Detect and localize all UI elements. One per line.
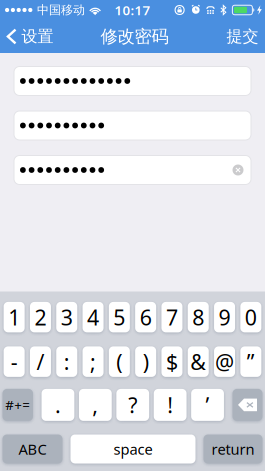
- staticText: 中国移动: [37, 3, 85, 17]
- button[interactable]: 8: [188, 302, 209, 332]
- button[interactable]: 提交: [216, 21, 265, 52]
- button[interactable]: 6: [135, 302, 156, 332]
- staticText: (: [116, 347, 122, 376]
- staticText: ,: [92, 391, 98, 419]
- staticText: $: [166, 347, 178, 376]
- button[interactable]: ’: [191, 389, 224, 421]
- button[interactable]: ?: [116, 389, 149, 421]
- button[interactable]: 4: [83, 302, 104, 332]
- button[interactable]: 7: [161, 302, 182, 332]
- button[interactable]: space: [70, 434, 195, 463]
- button[interactable]: :: [56, 346, 77, 377]
- button[interactable]: [14, 155, 251, 184]
- button[interactable]: 3: [56, 302, 77, 332]
- staticText: 1: [8, 303, 20, 331]
- button[interactable]: 2: [30, 302, 51, 332]
- button[interactable]: ABC: [2, 434, 62, 463]
- staticText: 修改密码: [100, 26, 168, 47]
- button[interactable]: .: [42, 389, 74, 421]
- button[interactable]: #+=: [2, 389, 33, 421]
- button[interactable]: [14, 111, 251, 140]
- button[interactable]: -: [4, 346, 25, 377]
- button[interactable]: $: [161, 346, 182, 377]
- button[interactable]: /: [30, 346, 51, 377]
- staticText: ;: [90, 347, 96, 376]
- staticText: @: [215, 347, 234, 376]
- button[interactable]: @: [214, 346, 235, 377]
- staticText: 9: [219, 303, 231, 331]
- staticText: 7: [166, 303, 178, 331]
- staticText: :: [64, 347, 70, 376]
- button[interactable]: return: [203, 434, 262, 463]
- button[interactable]: ): [135, 346, 156, 377]
- staticText: .: [55, 391, 61, 419]
- staticText: ): [143, 347, 149, 376]
- button[interactable]: [14, 66, 251, 95]
- staticText: -: [11, 347, 18, 376]
- staticText: 2: [34, 303, 46, 331]
- button[interactable]: !: [154, 389, 187, 421]
- staticText: 10:17: [114, 1, 150, 19]
- staticText: 设置: [21, 27, 53, 46]
- button[interactable]: (: [109, 346, 130, 377]
- button[interactable]: 1: [4, 302, 25, 332]
- staticText: space: [113, 439, 152, 459]
- staticText: 6: [140, 303, 152, 331]
- staticText: ?: [128, 391, 137, 419]
- button[interactable]: 删除: [232, 389, 262, 421]
- staticText: ”: [247, 347, 255, 376]
- staticText: 4: [87, 303, 99, 331]
- button[interactable]: ;: [83, 346, 104, 377]
- staticText: /: [36, 347, 44, 376]
- staticText: &: [190, 347, 206, 376]
- button[interactable]: &: [188, 346, 209, 377]
- button[interactable]: 清除文本: [229, 161, 247, 179]
- staticText: 提交: [226, 27, 258, 46]
- button[interactable]: ,: [79, 389, 112, 421]
- staticText: 5: [113, 303, 125, 331]
- button[interactable]: 设置: [0, 21, 61, 52]
- button[interactable]: 0: [240, 302, 261, 332]
- staticText: 8: [192, 303, 204, 331]
- button[interactable]: 5: [109, 302, 130, 332]
- staticText: ABC: [18, 439, 46, 459]
- staticText: ’: [206, 391, 210, 419]
- button[interactable]: 9: [214, 302, 235, 332]
- staticText: 0: [245, 303, 257, 331]
- staticText: 3: [61, 303, 73, 331]
- button[interactable]: ”: [240, 346, 261, 377]
- staticText: !: [167, 391, 173, 419]
- staticText: return: [211, 439, 254, 459]
- staticText: #+=: [5, 396, 30, 414]
